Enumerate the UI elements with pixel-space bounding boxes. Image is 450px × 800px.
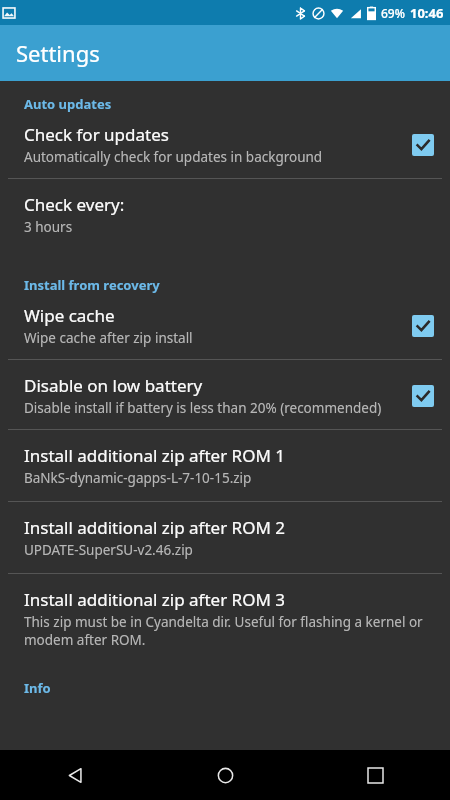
staticText: Check for updates [24, 123, 169, 146]
button[interactable]: Install additional zip after ROM 2 [0, 502, 450, 573]
staticText: BaNkS-dynamic-gapps-L-7-10-15.zip [24, 469, 252, 487]
button[interactable]: Home [150, 750, 300, 800]
staticText: This zip must be in Cyandelta dir. Usefu… [24, 613, 434, 649]
button[interactable]: Wipe cache [0, 294, 450, 359]
button[interactable]: Toggle setting [412, 385, 434, 407]
staticText: 3 hours [24, 218, 73, 236]
button[interactable]: Disable on low battery [0, 360, 450, 429]
staticText: Automatically check for updates in backg… [24, 148, 323, 166]
staticText: Auto updates [24, 95, 112, 113]
button[interactable]: Check for updates [0, 113, 450, 178]
staticText: Disable install if battery is less than … [24, 399, 382, 417]
staticText: Settings [16, 38, 100, 68]
staticText: Wipe cache [24, 304, 115, 327]
button[interactable]: Recent apps [300, 750, 450, 800]
staticText: 69% [381, 5, 405, 21]
button[interactable]: Install additional zip after ROM 1 [0, 430, 450, 501]
staticText: Info [24, 679, 51, 697]
button[interactable]: Install additional zip after ROM 3 [0, 574, 450, 663]
staticText: Install additional zip after ROM 2 [24, 516, 285, 539]
button[interactable]: Toggle setting [412, 315, 434, 337]
staticText: Disable on low battery [24, 374, 203, 397]
staticText: UPDATE-SuperSU-v2.46.zip [24, 541, 193, 559]
button[interactable]: Back [0, 750, 150, 800]
staticText: Install additional zip after ROM 1 [24, 444, 285, 467]
staticText: Install additional zip after ROM 3 [24, 588, 285, 611]
staticText: Check every: [24, 193, 125, 216]
button[interactable]: Check every: [0, 179, 450, 250]
staticText: Wipe cache after zip install [24, 329, 193, 347]
button[interactable]: Toggle setting [412, 134, 434, 156]
staticText: 10:46 [410, 4, 444, 22]
staticText: Install from recovery [24, 276, 160, 294]
